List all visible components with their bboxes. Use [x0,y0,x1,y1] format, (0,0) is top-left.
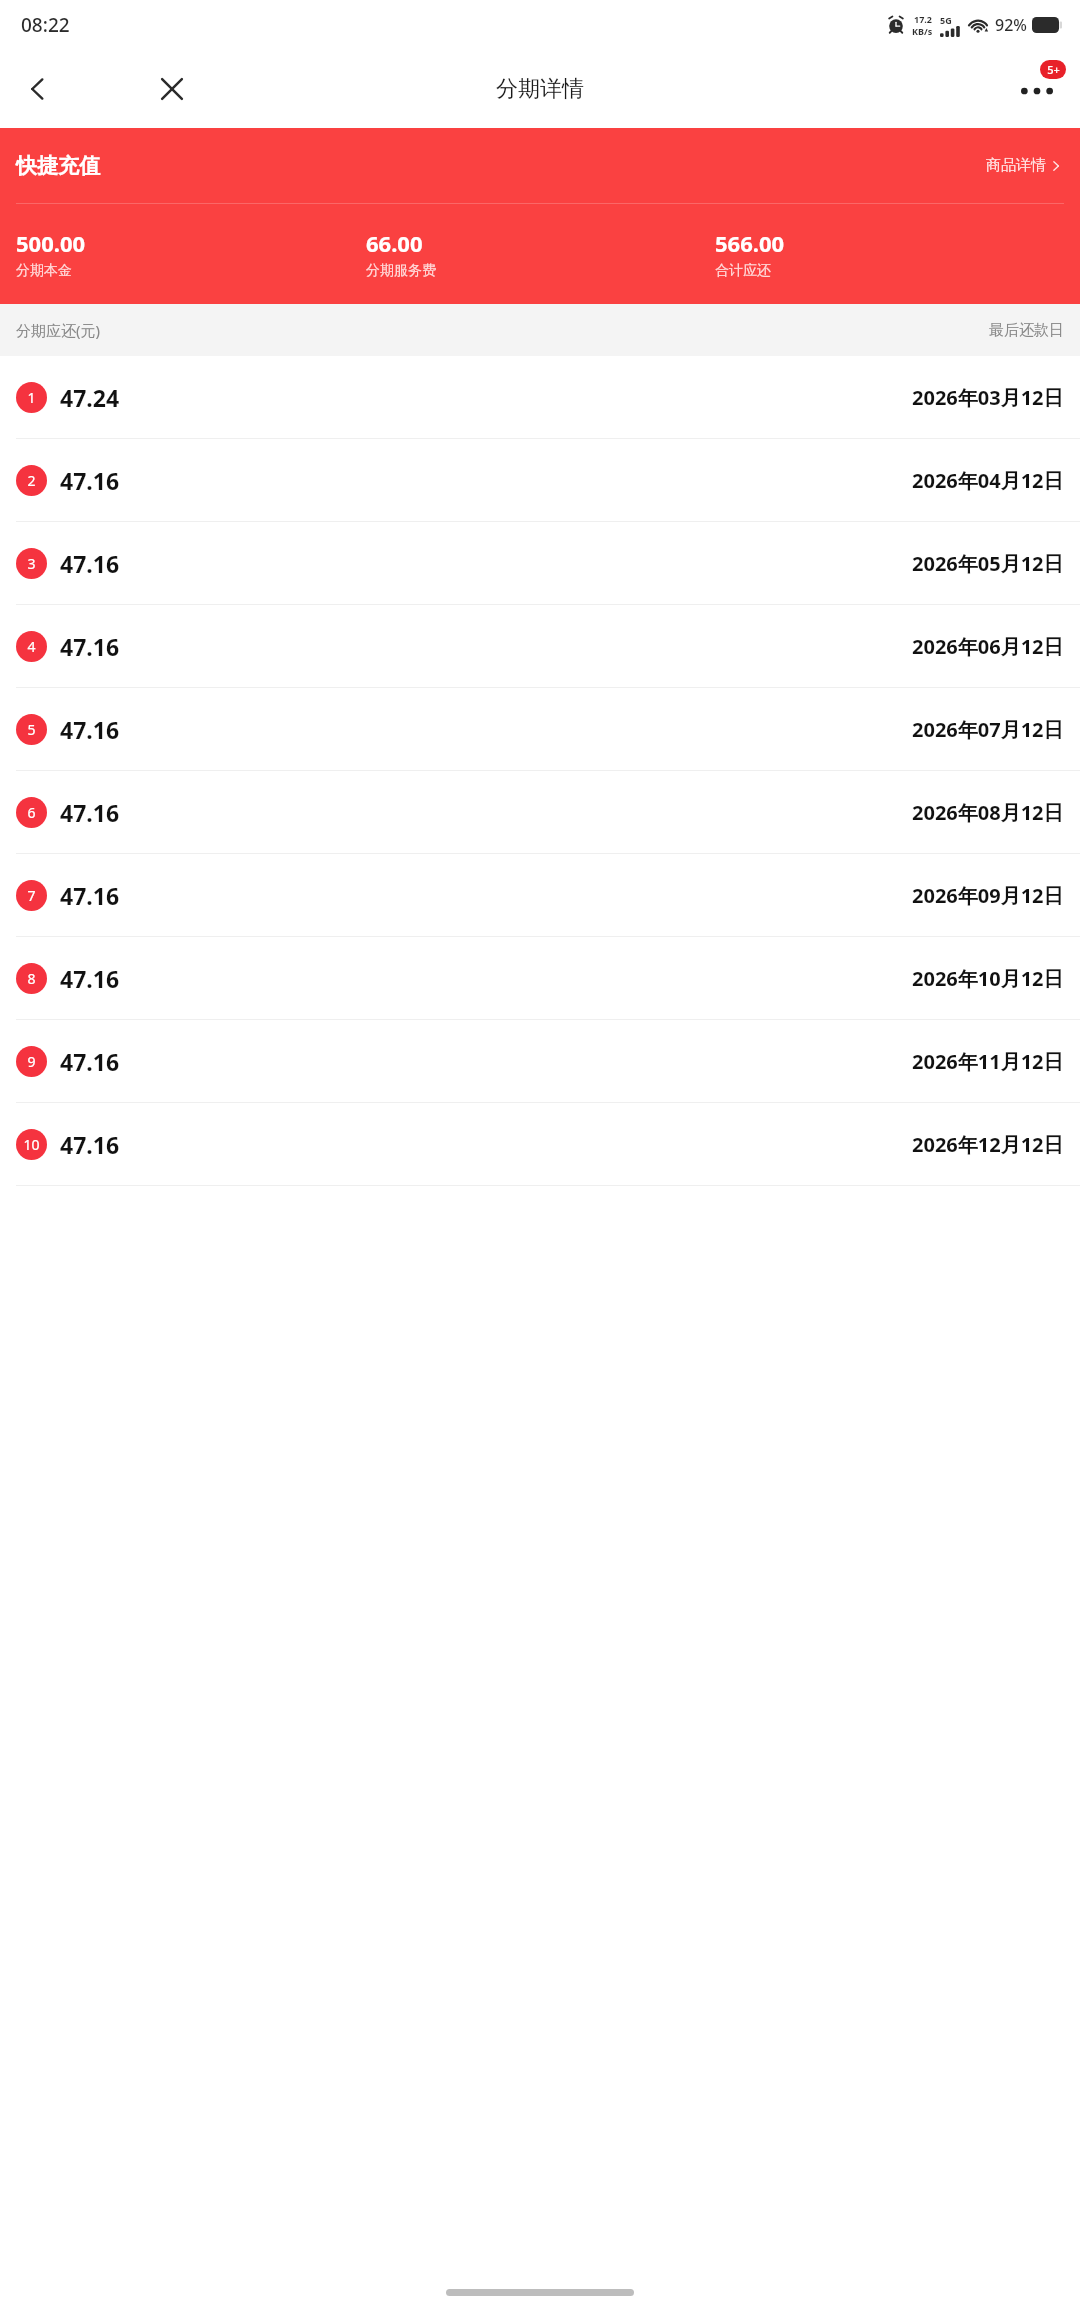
button[interactable]: 5 [0,688,1080,770]
button[interactable]: More options [1006,58,1068,120]
staticText: 2026年03月12日 [912,384,1064,411]
staticText: 47.16 [60,1129,120,1160]
staticText: 分期服务费 [366,262,436,280]
staticText: 4 [27,637,36,656]
staticText: 566.00 [715,228,785,258]
staticText: 快捷充值 [16,153,100,179]
staticText: 6 [27,803,36,822]
button[interactable]: 8 [0,937,1080,1019]
staticText: 47.16 [60,714,120,745]
staticText: 分期应还(元) [16,320,101,340]
staticText: 2026年07月12日 [912,716,1064,743]
staticText: 商品详情 [986,156,1046,175]
staticText: 2026年11月12日 [912,1048,1064,1075]
button[interactable]: Close [144,61,200,117]
button[interactable]: Back [10,61,66,117]
staticText: 47.16 [60,548,120,579]
staticText: 5 [27,720,36,739]
button[interactable]: 4 [0,605,1080,687]
staticText: 分期本金 [16,262,72,280]
staticText: 17.2 [914,13,932,25]
staticText: 47.16 [60,880,120,911]
button[interactable]: 6 [0,771,1080,853]
staticText: 08:22 [21,12,70,38]
staticText: 7 [27,886,36,905]
staticText: 2026年10月12日 [912,965,1064,992]
staticText: 47.16 [60,1046,120,1077]
staticText: 最后还款日 [989,321,1064,340]
staticText: 合计应还 [715,262,771,280]
button[interactable]: 9 [0,1020,1080,1102]
button[interactable]: 10 [0,1103,1080,1185]
staticText: 47.16 [60,797,120,828]
staticText: 500.00 [16,228,86,258]
button[interactable]: 2 [0,439,1080,521]
staticText: 66.00 [366,228,423,258]
staticText: 9 [27,1052,36,1071]
staticText: 92% [995,14,1027,36]
staticText: 47.16 [60,631,120,662]
staticText: 分期详情 [496,75,584,103]
staticText: 2026年05月12日 [912,550,1064,577]
staticText: 47.16 [60,465,120,496]
button[interactable]: 商品详情 [984,150,1064,181]
staticText: 2026年04月12日 [912,467,1064,494]
button[interactable]: 3 [0,522,1080,604]
staticText: KB/s [912,25,933,37]
staticText: 2026年09月12日 [912,882,1064,909]
staticText: 5G [940,14,952,26]
staticText: 5+ [1047,62,1060,77]
button[interactable]: 1 [0,356,1080,438]
staticText: 10 [23,1135,40,1154]
staticText: 2026年08月12日 [912,799,1064,826]
staticText: 2 [27,471,36,490]
staticText: 47.24 [60,382,120,413]
staticText: 2026年06月12日 [912,633,1064,660]
staticText: 3 [27,554,36,573]
staticText: 47.16 [60,963,120,994]
button[interactable]: 7 [0,854,1080,936]
staticText: 1 [27,388,36,407]
staticText: 8 [27,969,36,988]
staticText: 2026年12月12日 [912,1131,1064,1158]
